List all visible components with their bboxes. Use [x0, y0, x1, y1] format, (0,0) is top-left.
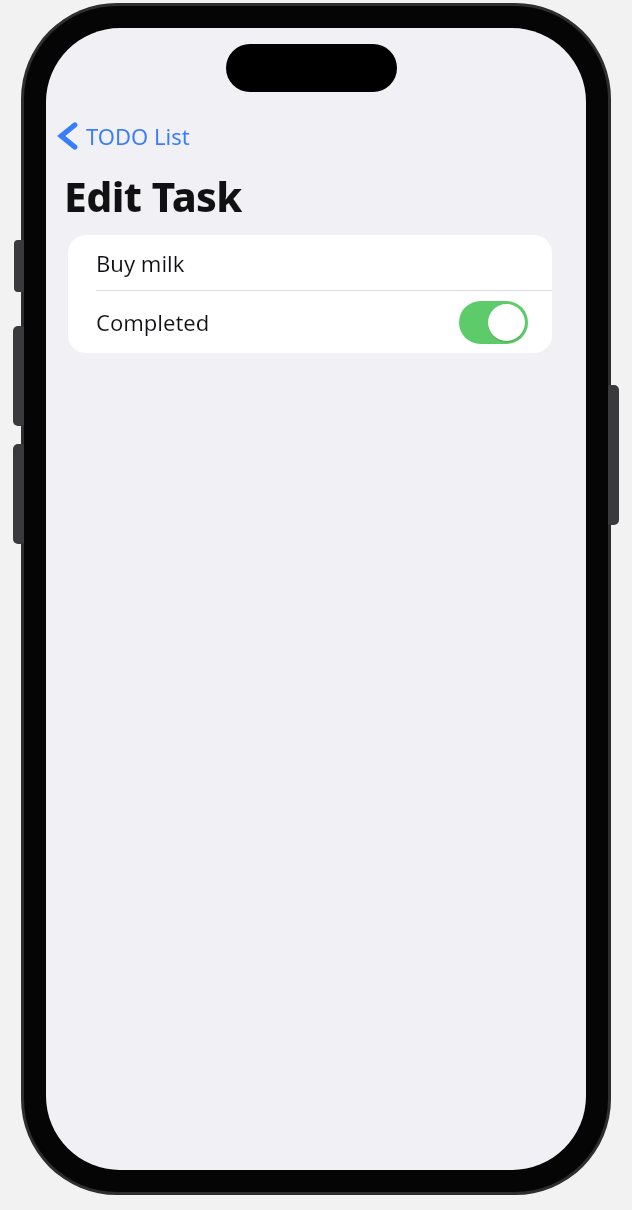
button[interactable]: Completed toggle [459, 301, 528, 344]
staticText: TODO List [86, 121, 190, 151]
button[interactable]: Back [54, 116, 194, 156]
button[interactable]: Buy milk [68, 235, 552, 290]
staticText: Completed [96, 307, 210, 337]
staticText: Edit Task [64, 168, 242, 224]
staticText: Buy milk [96, 248, 185, 278]
button[interactable]: Completed [68, 291, 552, 353]
other: Back [58, 121, 78, 151]
